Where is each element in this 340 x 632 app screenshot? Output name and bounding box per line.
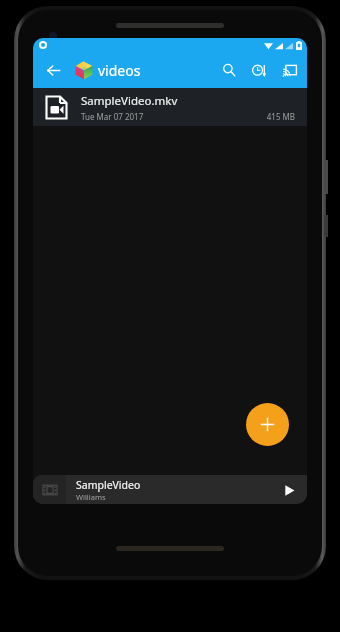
staticText: Tue Mar 07 2017 xyxy=(81,111,144,122)
button[interactable]: Back xyxy=(39,56,67,84)
button[interactable]: Add video xyxy=(246,403,289,446)
button[interactable]: Cast xyxy=(275,56,303,84)
staticText: SampleVideo xyxy=(76,478,141,492)
staticText: Williams xyxy=(76,492,106,502)
staticText: 415 MB xyxy=(266,111,295,122)
staticText: SampleVideo.mkv xyxy=(81,93,178,109)
staticText: videos xyxy=(98,61,141,80)
button[interactable]: SampleVideo xyxy=(33,475,307,504)
button[interactable]: Search xyxy=(215,56,243,84)
button[interactable]: SampleVideo.mkv xyxy=(33,88,307,126)
button[interactable]: Sort by date xyxy=(245,56,273,84)
button[interactable]: Play xyxy=(275,476,303,504)
